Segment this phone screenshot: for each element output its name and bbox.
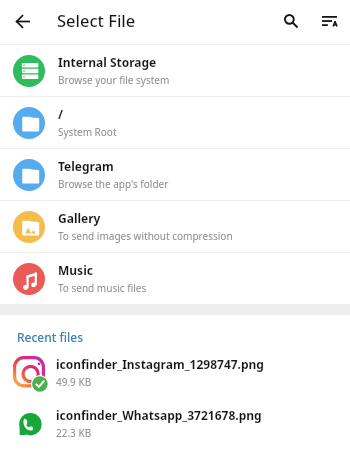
button[interactable]: Music <box>0 253 350 304</box>
staticText: 22.3 KB <box>56 426 92 440</box>
button[interactable]: / <box>0 97 350 148</box>
staticText: 49.9 KB <box>56 375 92 389</box>
button[interactable]: Back <box>0 0 45 44</box>
staticText: / <box>58 106 63 122</box>
staticText: Recent files <box>17 329 83 345</box>
button[interactable]: iconfinder_Whatsapp_3721678.png <box>0 398 350 449</box>
staticText: System Root <box>58 125 117 139</box>
staticText: Browse your file system <box>58 73 170 87</box>
staticText: To send music files <box>58 281 147 295</box>
staticText: Browse the app's folder <box>58 177 169 191</box>
staticText: Internal Storage <box>58 54 157 70</box>
button[interactable]: Sort by name <box>308 0 350 44</box>
staticText: Gallery <box>58 210 101 226</box>
button[interactable]: Telegram <box>0 149 350 200</box>
staticText: Telegram <box>58 158 114 174</box>
button[interactable]: Search <box>274 0 308 44</box>
staticText: Music <box>58 262 93 278</box>
staticText: Select File <box>57 9 136 31</box>
staticText: To send images without compression <box>58 229 233 243</box>
button[interactable]: Internal Storage <box>0 45 350 96</box>
button[interactable]: Gallery <box>0 201 350 252</box>
staticText: iconfinder_Whatsapp_3721678.png <box>56 407 262 423</box>
button[interactable]: iconfinder_Instagram_1298747.png <box>0 347 350 398</box>
staticText: iconfinder_Instagram_1298747.png <box>56 356 264 372</box>
